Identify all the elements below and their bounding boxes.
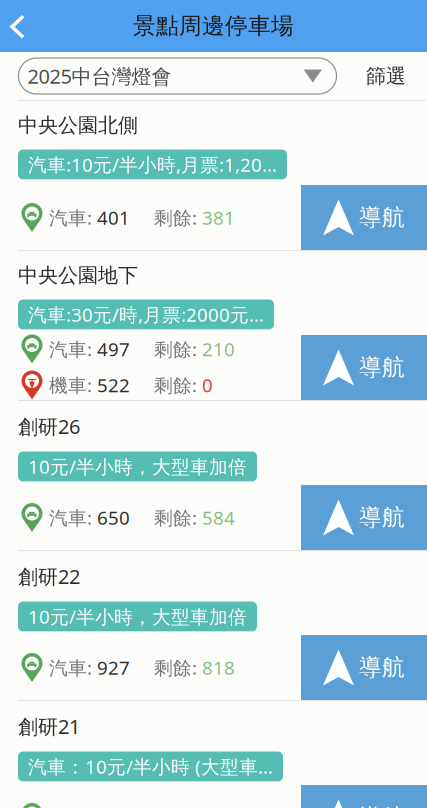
button[interactable]: 導航 bbox=[301, 635, 427, 700]
staticText: 10元/半小時，大型車加倍 bbox=[28, 454, 247, 479]
staticText: 剩餘: bbox=[154, 205, 202, 230]
staticText: 497 bbox=[97, 337, 130, 361]
staticText: 導航 bbox=[359, 504, 405, 531]
staticText: 381 bbox=[202, 205, 235, 230]
staticText: 中央公園北側 bbox=[18, 113, 138, 138]
button[interactable]: 導航 bbox=[301, 185, 427, 250]
button[interactable]: 導航 bbox=[301, 785, 427, 808]
staticText: 汽車: bbox=[49, 655, 97, 680]
button[interactable]: 2025中台灣燈會 bbox=[18, 58, 336, 94]
staticText: 584 bbox=[202, 505, 235, 530]
staticText: 818 bbox=[202, 655, 235, 680]
staticText: 導航 bbox=[359, 204, 405, 231]
staticText: 導航 bbox=[359, 354, 405, 381]
staticText: 汽車: bbox=[49, 505, 97, 530]
staticText: 522 bbox=[97, 373, 130, 397]
staticText: 篩選 bbox=[366, 64, 406, 88]
staticText: 汽車:10元/半小時,月票:1,20… bbox=[28, 152, 277, 177]
button[interactable]: 導航 bbox=[301, 485, 427, 550]
button[interactable]: 篩選 bbox=[362, 56, 410, 96]
staticText: 汽車:30元/時,月票:2000元… bbox=[28, 302, 264, 327]
staticText: 導航 bbox=[359, 654, 405, 681]
staticText: 汽車: bbox=[49, 205, 97, 230]
staticText: 汽車：10元/半小時 (大型車… bbox=[28, 754, 273, 779]
staticText: 927 bbox=[97, 655, 130, 680]
staticText: 10元/半小時，大型車加倍 bbox=[28, 604, 247, 629]
staticText: 創研22 bbox=[18, 563, 80, 590]
staticText: 景點周邊停車場 bbox=[133, 12, 294, 40]
staticText: 汽車: bbox=[49, 337, 97, 361]
staticText: 中央公園地下 bbox=[18, 263, 138, 288]
staticText: 0 bbox=[202, 373, 213, 397]
staticText: 創研26 bbox=[18, 413, 80, 440]
staticText: 導航 bbox=[359, 804, 405, 808]
staticText: 剩餘: bbox=[154, 337, 202, 361]
staticText: 650 bbox=[97, 505, 130, 530]
staticText: 機車: bbox=[49, 373, 97, 397]
button[interactable]: Back bbox=[0, 0, 39, 52]
staticText: 創研21 bbox=[18, 713, 80, 740]
staticText: 剩餘: bbox=[154, 373, 202, 397]
button[interactable]: 導航 bbox=[301, 335, 427, 400]
staticText: 剩餘: bbox=[154, 655, 202, 680]
staticText: 2025中台灣燈會 bbox=[27, 63, 171, 89]
staticText: 401 bbox=[97, 205, 130, 230]
staticText: 剩餘: bbox=[154, 505, 202, 530]
staticText: 210 bbox=[202, 337, 235, 361]
